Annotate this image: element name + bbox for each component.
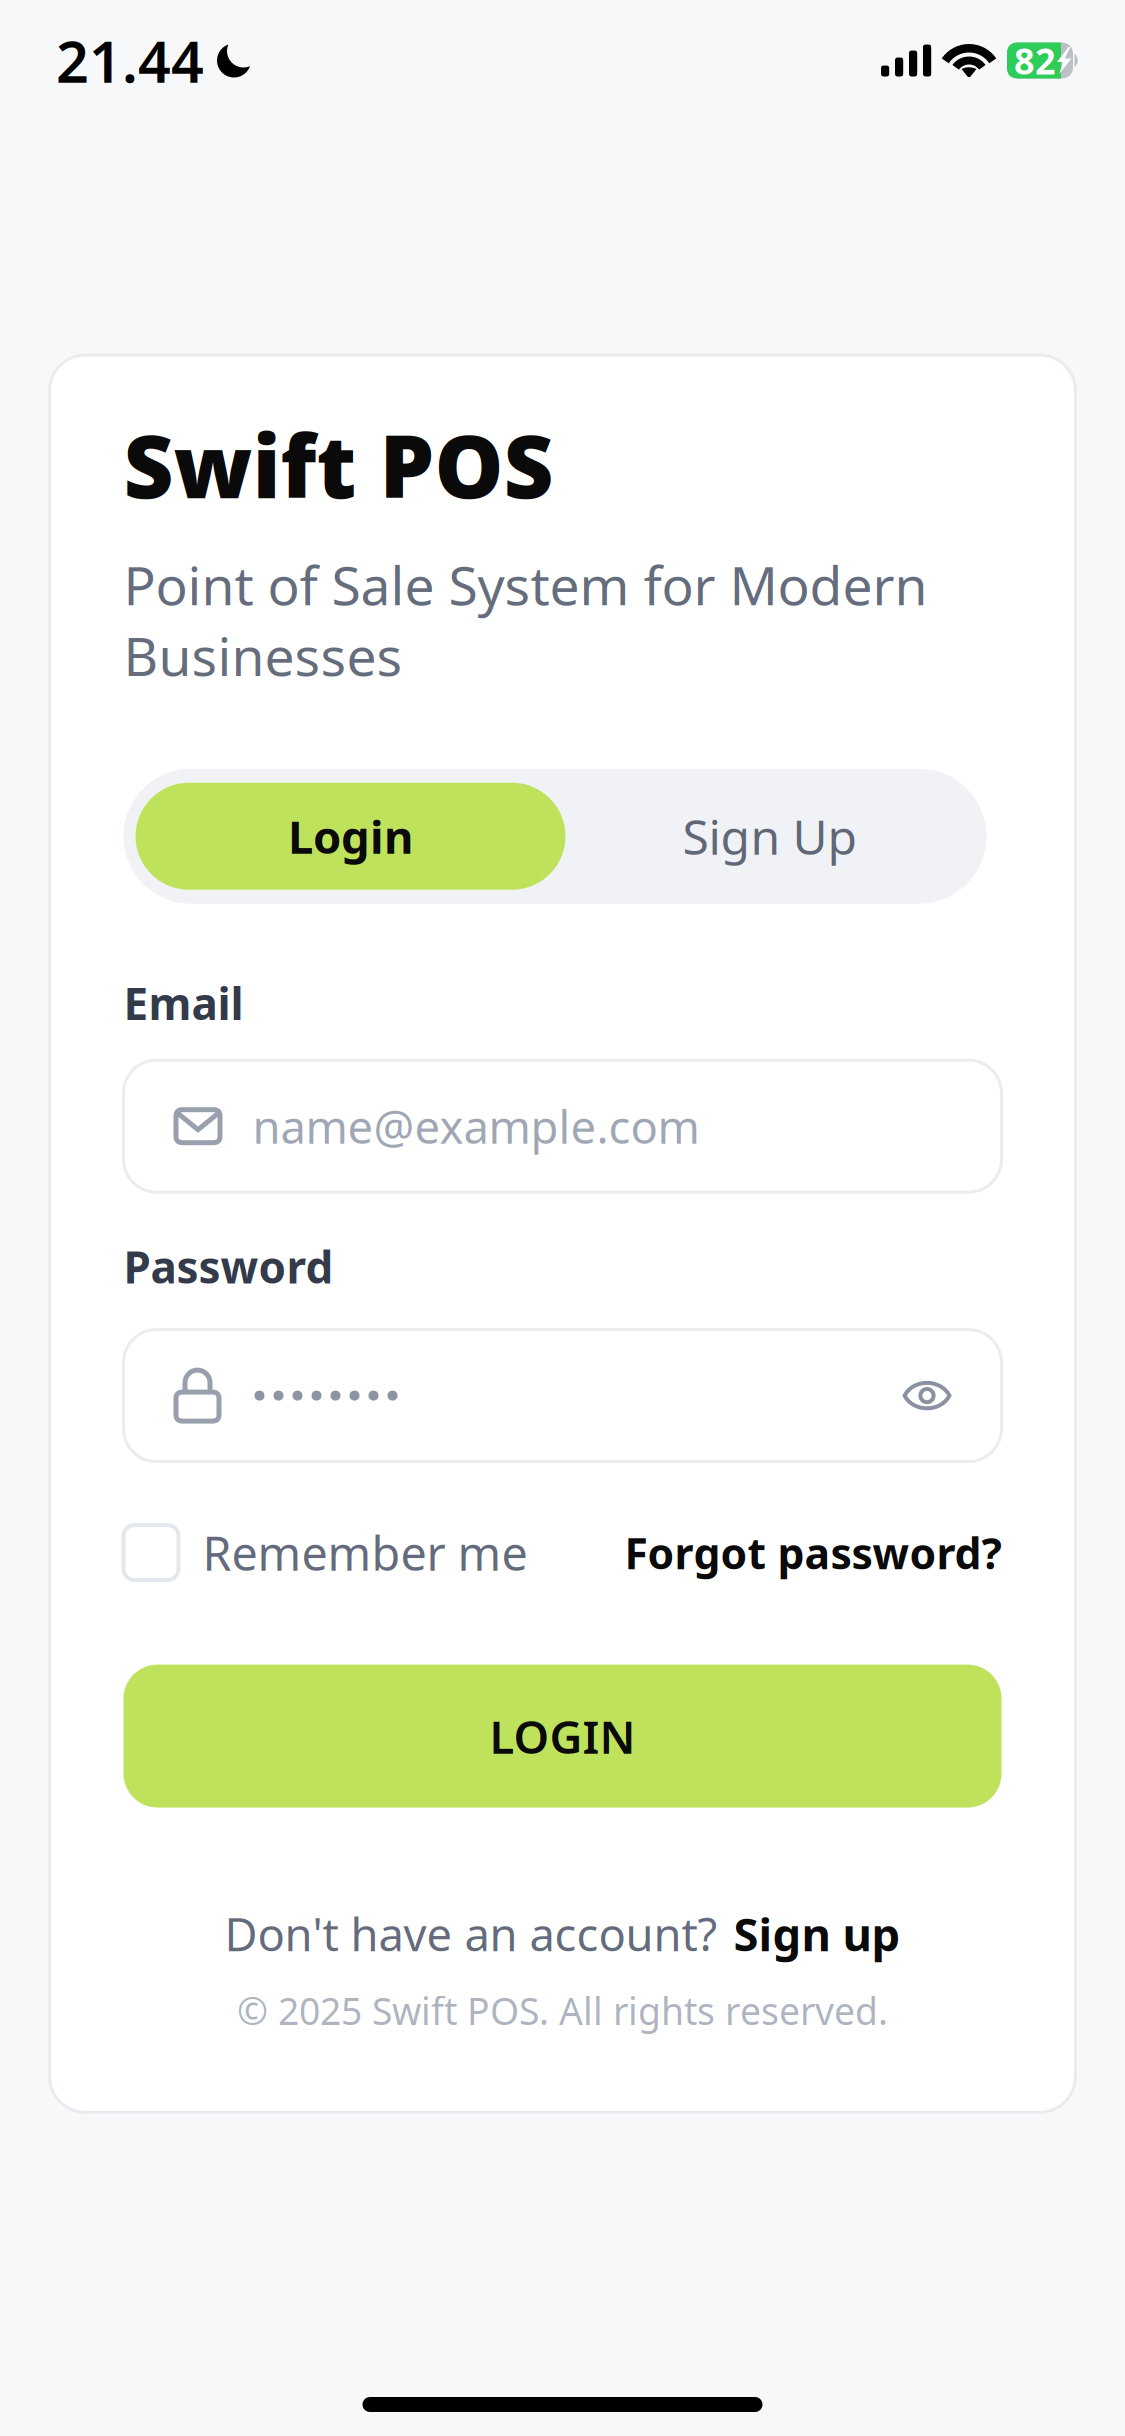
staticText: Point of Sale System for Modern Business… [123, 549, 927, 691]
button[interactable]: Login [135, 783, 565, 890]
staticText: Login [288, 806, 413, 866]
button[interactable]: Remember me [123, 1522, 527, 1584]
button[interactable]: Show password [902, 1377, 951, 1415]
staticText: 82 [1014, 37, 1056, 84]
staticText: 21.44 [56, 22, 204, 98]
button[interactable]: Don't have an account? [224, 1904, 900, 1964]
staticText: Password [123, 1237, 333, 1296]
staticText: © 2025 Swift POS. All rights reserved. [237, 1986, 888, 2035]
staticText: Sign up [733, 1904, 900, 1964]
staticText: name@example.com [252, 1096, 699, 1156]
staticText: Remember me [202, 1522, 527, 1584]
staticText: Sign Up [682, 804, 857, 868]
staticText: LOGIN [489, 1706, 635, 1766]
staticText: Email [123, 974, 243, 1032]
staticText: Forgot password? [624, 1524, 1001, 1581]
staticText: Swift POS [123, 407, 553, 522]
button[interactable]: Sign Up [565, 783, 974, 890]
button[interactable]: Forgot password? [624, 1524, 1001, 1581]
button[interactable]: LOGIN [123, 1665, 1001, 1808]
staticText: Don't have an account? [224, 1904, 717, 1964]
